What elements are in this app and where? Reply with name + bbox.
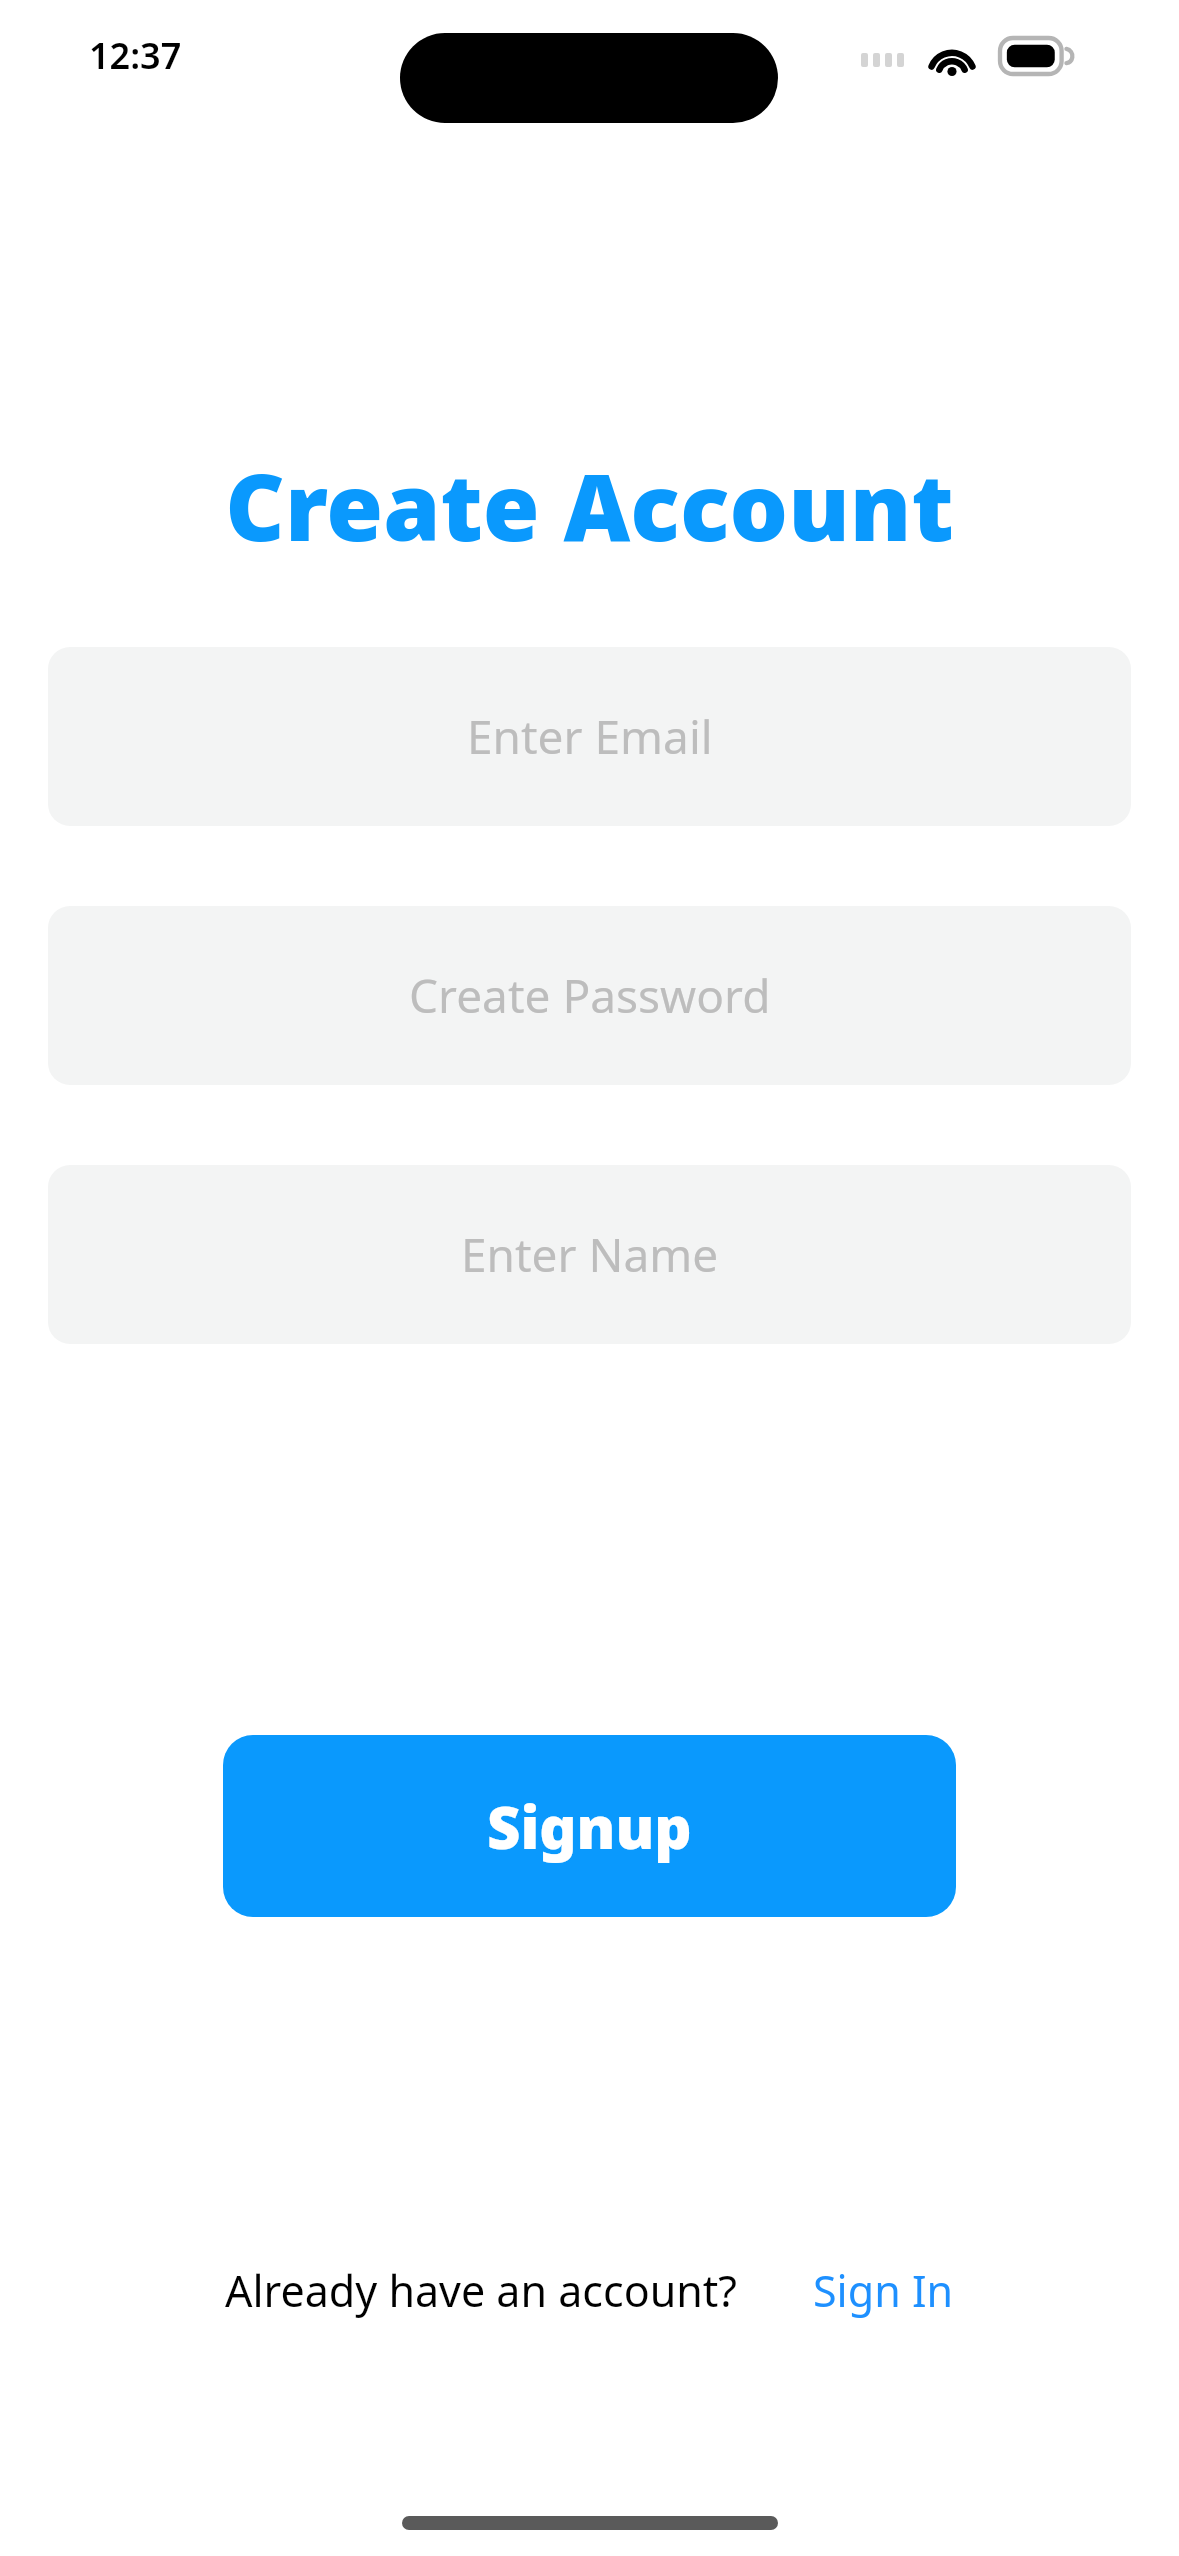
button[interactable]: Signup [223, 1735, 956, 1917]
button[interactable]: Already have an account? [225, 2261, 738, 2320]
button[interactable]: Sign In [813, 2261, 954, 2320]
staticText: Create Password [409, 964, 771, 1027]
staticText: Signup [487, 1787, 692, 1866]
staticText: Enter Email [467, 705, 713, 768]
button[interactable]: Enter Name [48, 1165, 1131, 1344]
button[interactable]: Create Password [48, 906, 1131, 1085]
staticText: 12:37 [89, 31, 182, 80]
button[interactable]: Enter Email [48, 647, 1131, 826]
staticText: Enter Name [461, 1223, 719, 1286]
staticText: Create Account [0, 443, 1179, 568]
